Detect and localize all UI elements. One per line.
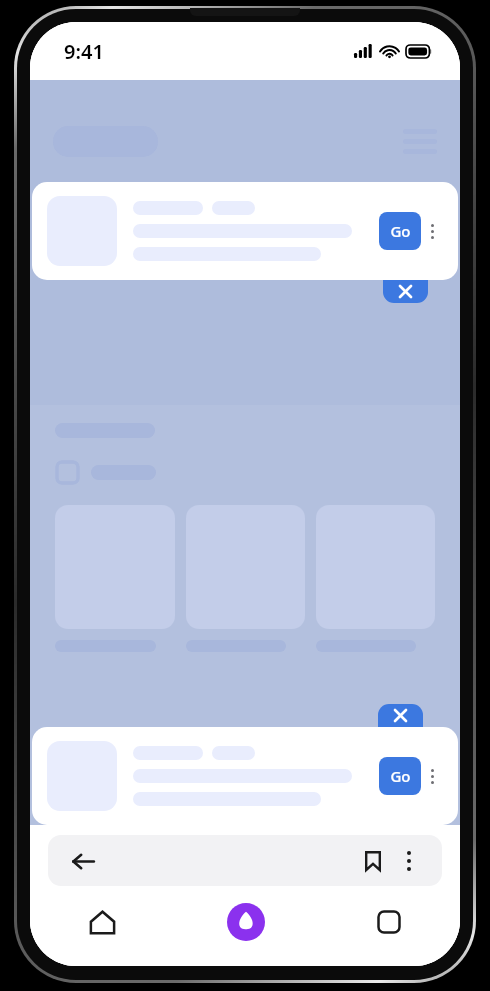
button[interactable]: Home [30,886,174,958]
button[interactable]: Assistant [174,886,317,958]
button[interactable]: Go [379,757,421,795]
button[interactable]: Back [64,842,102,880]
button[interactable]: More options [421,757,443,795]
button[interactable]: Close [378,704,423,727]
button[interactable]: Go [32,182,458,280]
staticText: 9:41 [64,38,104,65]
button[interactable]: More options [392,844,426,878]
button[interactable]: Go [32,727,458,825]
staticText: Go [390,766,411,786]
button[interactable]: Close [383,280,428,303]
button[interactable]: More options [421,212,443,250]
button[interactable]: Recents [317,886,460,958]
staticText: Go [390,221,411,241]
button[interactable]: Go [379,212,421,250]
button[interactable]: Bookmark [354,842,392,880]
